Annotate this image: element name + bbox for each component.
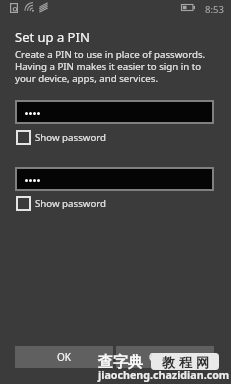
staticText: Create a PIN to use in place of password…: [15, 48, 206, 85]
staticText: 教: [162, 354, 175, 370]
button[interactable]: OK: [15, 346, 113, 368]
other: SD card: [10, 3, 18, 13]
staticText: Show password: [35, 131, 107, 144]
button[interactable]: [17, 169, 212, 189]
other: Cellular signal: [39, 3, 48, 12]
other: Battery: [181, 4, 195, 11]
staticText: Show password: [35, 197, 107, 210]
other: Wi-Fi: [25, 3, 34, 12]
staticText: 查字典: [98, 353, 143, 372]
staticText: Set up a PIN: [15, 28, 90, 46]
staticText: OK: [57, 350, 71, 364]
button[interactable]: Cancel: [116, 346, 214, 368]
button[interactable]: [17, 102, 212, 122]
staticText: Cancel: [149, 350, 181, 364]
staticText: 网: [196, 354, 209, 370]
staticText: 8:53: [205, 3, 224, 16]
staticText: jiaocheng.chazidian.com: [98, 368, 230, 383]
staticText: 程: [179, 354, 192, 370]
button[interactable]: Show password: [16, 196, 107, 211]
button[interactable]: Show password: [16, 130, 107, 145]
